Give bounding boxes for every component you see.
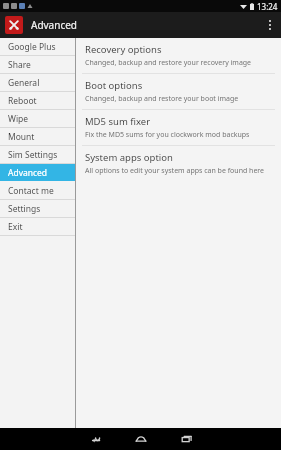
button[interactable]: Sim Settings: [0, 146, 75, 163]
staticText: Wipe: [8, 113, 29, 125]
staticText: Settings: [8, 203, 41, 215]
staticText: Boot options: [85, 79, 143, 92]
staticText: Share: [8, 59, 31, 71]
button[interactable]: Contact me: [0, 182, 75, 199]
button[interactable]: Reboot: [0, 92, 75, 109]
button[interactable]: Wipe: [0, 110, 75, 127]
button[interactable]: More options: [259, 12, 281, 38]
staticText: Mount: [8, 131, 35, 143]
button[interactable]: Exit: [0, 218, 75, 235]
button[interactable]: Recent apps: [164, 428, 210, 450]
button[interactable]: MD5 sum fixer: [76, 110, 281, 145]
staticText: Google Plus: [8, 41, 56, 53]
button[interactable]: Settings: [0, 200, 75, 217]
staticText: Reboot: [8, 95, 37, 107]
staticText: Fix the MD5 sums for you clockwork mod b…: [85, 130, 250, 140]
button[interactable]: Share: [0, 56, 75, 73]
staticText: All options to edit your system apps can…: [85, 166, 265, 176]
staticText: Advanced: [31, 18, 77, 32]
button[interactable]: Home: [118, 428, 164, 450]
staticText: Exit: [8, 221, 23, 233]
staticText: Changed, backup and restore your recover…: [85, 58, 252, 68]
button[interactable]: System apps option: [76, 146, 281, 181]
button[interactable]: Mount: [0, 128, 75, 145]
button[interactable]: General: [0, 74, 75, 91]
staticText: Sim Settings: [8, 149, 58, 161]
staticText: General: [8, 77, 40, 89]
button[interactable]: Recovery options: [76, 38, 281, 73]
button[interactable]: Google Plus: [0, 38, 75, 55]
button[interactable]: Advanced: [0, 164, 75, 181]
button[interactable]: Boot options: [76, 74, 281, 109]
staticText: Recovery options: [85, 43, 162, 56]
staticText: Changed, backup and restore your boot im…: [85, 94, 239, 104]
staticText: Advanced: [8, 167, 48, 179]
staticText: 13:24: [257, 1, 278, 12]
staticText: System apps option: [85, 151, 173, 164]
button[interactable]: Back: [72, 428, 118, 450]
staticText: MD5 sum fixer: [85, 115, 151, 128]
staticText: Contact me: [8, 185, 54, 197]
